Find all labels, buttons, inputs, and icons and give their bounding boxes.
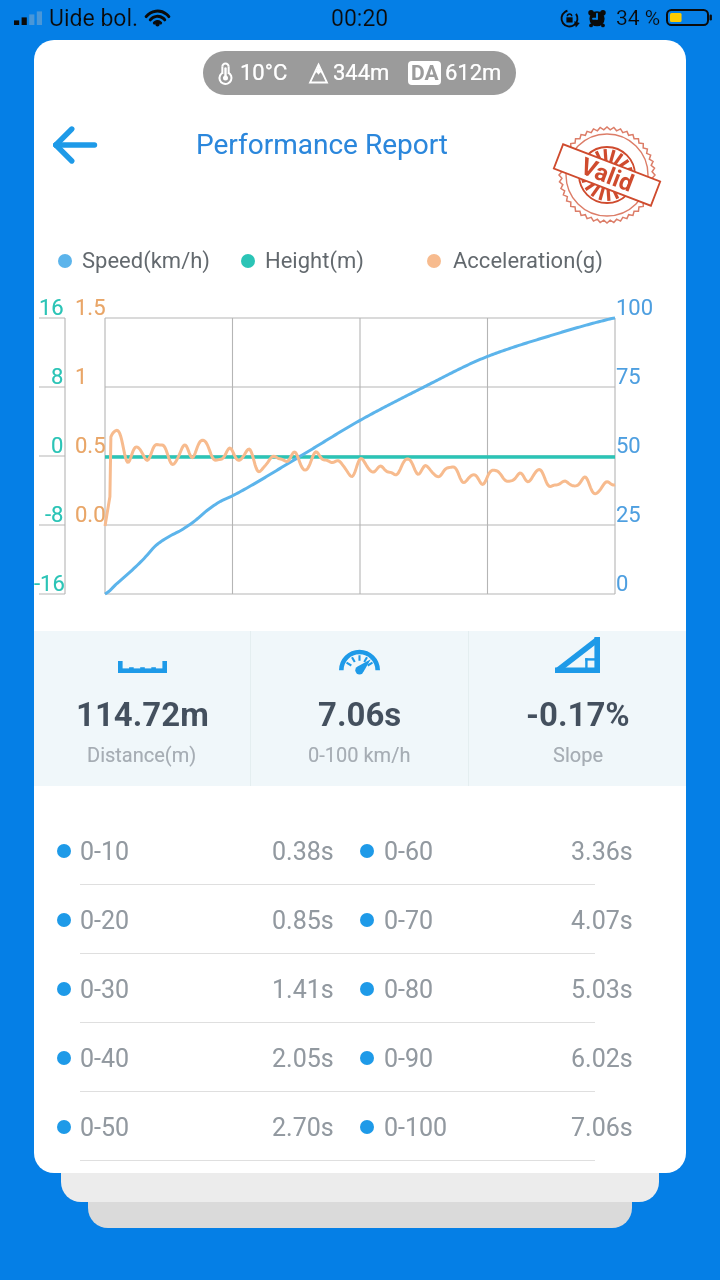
staticText: 344m (333, 60, 390, 86)
staticText: 0 (51, 433, 64, 459)
staticText: 0.5 (75, 433, 106, 459)
staticText: 10°C (240, 60, 288, 86)
staticText: -0.17% (526, 695, 630, 734)
staticText: 0-40 (80, 1044, 130, 1073)
staticText: 25 (616, 502, 641, 528)
staticText: 100 (616, 295, 654, 321)
staticText: DA (411, 61, 439, 85)
staticText: 0-90 (384, 1044, 434, 1073)
staticText: 1 (75, 364, 88, 390)
staticText: 2.70s (272, 1113, 334, 1142)
staticText: 0.85s (272, 906, 334, 935)
staticText: 75 (616, 364, 641, 390)
staticText: 6.02s (571, 1044, 633, 1073)
staticText: 2.05s (272, 1044, 334, 1073)
button[interactable]: 0-40 (34, 1038, 686, 1107)
button[interactable]: 0-20 (34, 900, 686, 969)
staticText: 7.06s (318, 695, 402, 734)
button[interactable]: 114.72m (34, 631, 250, 786)
button[interactable]: 0-10 (34, 831, 686, 900)
staticText: 5.03s (571, 975, 633, 1004)
staticText: Speed(km/h) (82, 248, 210, 274)
button[interactable]: Height(m) (235, 243, 372, 279)
staticText: Slope (553, 743, 603, 766)
staticText: 0-50 (80, 1113, 130, 1142)
button[interactable]: Back (42, 116, 108, 174)
staticText: 0-10 (80, 837, 130, 866)
staticText: Distance(m) (87, 743, 197, 766)
staticText: -8 (45, 502, 64, 528)
button[interactable]: 0-30 (34, 969, 686, 1038)
staticText: Acceleration(g) (453, 248, 603, 274)
staticText: 1.41s (272, 975, 334, 1004)
staticText: 4.07s (571, 906, 633, 935)
staticText: Uide bol. (49, 5, 139, 32)
staticText: 8 (51, 364, 64, 390)
staticText: 7.06s (571, 1113, 633, 1142)
button[interactable]: Acceleration(g) (421, 243, 611, 279)
staticText: 0-100 km/h (308, 743, 411, 766)
staticText: 3.36s (571, 837, 633, 866)
staticText: Valid (577, 152, 638, 198)
staticText: 00:20 (331, 5, 389, 32)
staticText: 0-100 (384, 1113, 448, 1142)
button[interactable]: -0.17% (469, 631, 686, 786)
staticText: Performance Report (70, 128, 574, 161)
staticText: 16 (39, 295, 64, 321)
staticText: 0-60 (384, 837, 434, 866)
staticText: 0-70 (384, 906, 434, 935)
button[interactable]: 10°C (203, 51, 516, 95)
staticText: 1.5 (75, 295, 106, 321)
staticText: 50 (616, 433, 641, 459)
staticText: 0-80 (384, 975, 434, 1004)
staticText: -16 (34, 571, 64, 597)
staticText: 0 (616, 571, 629, 597)
staticText: 114.72m (76, 695, 209, 734)
staticText: 34 % (616, 6, 661, 31)
staticText: 612m (445, 60, 502, 86)
button[interactable]: Speed(km/h) (52, 243, 218, 279)
staticText: 0-30 (80, 975, 130, 1004)
button[interactable]: 7.06s (251, 631, 468, 786)
staticText: 0.0 (75, 502, 106, 528)
staticText: 0.38s (272, 837, 334, 866)
button[interactable]: 0-50 (34, 1107, 686, 1173)
staticText: 0-20 (80, 906, 130, 935)
staticText: Height(m) (265, 248, 364, 274)
